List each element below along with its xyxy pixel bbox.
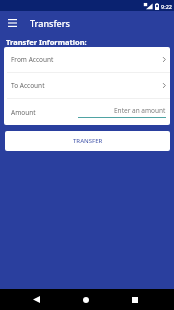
button[interactable]: Home xyxy=(71,289,100,310)
staticText: Transfers xyxy=(30,17,70,29)
staticText: Transfer Information: xyxy=(6,37,87,47)
staticText: Enter an amount xyxy=(114,106,166,115)
staticText: TRANSFER xyxy=(73,137,103,145)
button[interactable]: TRANSFER xyxy=(5,131,170,151)
button[interactable]: Back xyxy=(22,289,51,310)
button[interactable]: Open navigation menu xyxy=(0,11,24,35)
staticText: 9:22 xyxy=(161,3,172,10)
staticText: Amount xyxy=(11,108,36,117)
button[interactable]: Recent apps xyxy=(120,289,149,310)
staticText: To Account xyxy=(11,81,45,90)
staticText: From Account xyxy=(11,55,54,64)
button[interactable]: From Account xyxy=(4,47,170,72)
button[interactable]: To Account xyxy=(4,73,170,98)
